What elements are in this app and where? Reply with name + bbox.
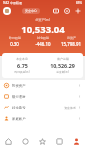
button[interactable]: 总资产: [57, 36, 85, 47]
staticText: 总金额(元): [56, 70, 69, 74]
button[interactable]: 投资资产: [0, 80, 85, 91]
staticText: 10,533.04: [21, 23, 65, 36]
staticText: 安全中心: [25, 9, 37, 13]
staticText: 账户总额: [57, 57, 69, 61]
staticText: 15,798.91: [61, 41, 81, 47]
button[interactable]: Add: [74, 7, 82, 15]
staticText: 投资资产: [12, 84, 26, 88]
staticText: 家庭账户: [12, 117, 26, 121]
staticText: 9:32: [3, 1, 9, 5]
staticText: 昨日收益(元): [14, 70, 30, 74]
button[interactable]: Fund: [34, 133, 51, 150]
button[interactable]: Profile: [3, 7, 11, 15]
button[interactable]: 昨日收益: [0, 36, 29, 47]
staticText: 总资产: [67, 36, 76, 40]
button[interactable]: Scan: [52, 7, 60, 15]
button[interactable]: 银行理财: [0, 91, 85, 102]
button[interactable]: Home: [0, 133, 17, 150]
staticText: 银行理财: [12, 95, 26, 99]
staticText: -446.10: [35, 41, 51, 47]
button[interactable]: 家庭账户: [0, 113, 85, 124]
button[interactable]: 持仓盈亏: [0, 102, 85, 113]
staticText: 6.75: [17, 62, 28, 69]
staticText: 85%: [76, 1, 82, 5]
staticText: 昨日收益: [9, 36, 21, 40]
button[interactable]: 持仓收益: [29, 36, 57, 47]
button[interactable]: 安全中心: [22, 8, 40, 14]
staticText: 总资产(元): [35, 18, 50, 22]
button[interactable]: 本金本息: [2, 57, 42, 74]
button[interactable]: 账户总额: [42, 57, 83, 74]
staticText: 本金本息: [16, 57, 28, 61]
staticText: 持仓盈亏: [12, 106, 26, 110]
button[interactable]: Profile: [68, 133, 85, 150]
button[interactable]: Wealth: [17, 133, 34, 150]
staticText: 10,526.29: [50, 62, 75, 69]
button[interactable]: Service: [63, 7, 71, 15]
staticText: 中国联通: [10, 1, 22, 5]
staticText: 资金体系: [64, 106, 76, 110]
button[interactable]: News: [51, 133, 68, 150]
staticText: 持仓收益: [37, 36, 49, 40]
staticText: 0.30: [10, 41, 19, 47]
